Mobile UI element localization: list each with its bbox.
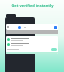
button[interactable] <box>6 37 58 42</box>
button[interactable] <box>6 42 58 47</box>
button[interactable] <box>51 48 57 51</box>
button[interactable] <box>6 24 58 30</box>
staticText: Get verified instantly <box>11 3 54 8</box>
